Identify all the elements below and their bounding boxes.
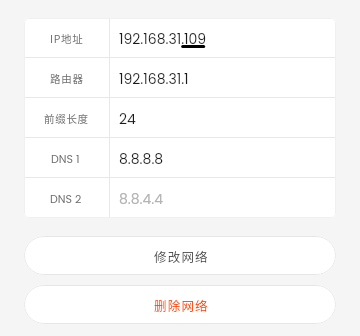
staticText: 路由器 <box>50 71 84 86</box>
staticText: 修改网络 <box>154 247 209 265</box>
staticText: 192.168.31.1 <box>119 69 189 89</box>
staticText: 8.8.8.8 <box>119 149 164 169</box>
button[interactable]: 路由器 <box>24 58 336 98</box>
staticText: 8.8.4.4 <box>119 189 164 209</box>
button[interactable]: 修改网络 <box>24 236 336 275</box>
staticText: 删除网络 <box>154 296 209 314</box>
staticText: IP地址 <box>50 31 84 46</box>
staticText: 24 <box>119 109 136 129</box>
staticText: DNS 1 <box>51 151 80 166</box>
button[interactable]: DNS 1 <box>24 138 336 178</box>
button[interactable]: 删除网络 <box>24 285 336 324</box>
staticText: 前缀长度 <box>44 111 89 126</box>
button[interactable]: DNS 2 <box>24 178 336 218</box>
staticText: DNS 2 <box>50 191 82 206</box>
staticText: 192.168.31.109 <box>119 29 207 49</box>
button[interactable]: IP地址 <box>24 18 336 58</box>
button[interactable]: 前缀长度 <box>24 98 336 138</box>
